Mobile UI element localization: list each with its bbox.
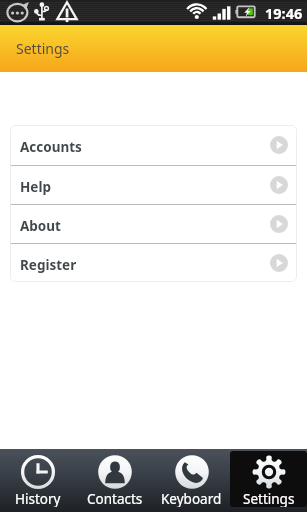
staticText: Settings	[16, 39, 70, 58]
staticText: About	[20, 217, 61, 235]
button[interactable]: Contacts	[76, 451, 153, 507]
staticText: Contacts	[87, 490, 143, 507]
button[interactable]: Help	[10, 165, 297, 204]
button[interactable]: Settings	[230, 451, 307, 507]
button[interactable]: About	[10, 204, 297, 243]
staticText: History	[15, 490, 61, 507]
staticText: Keyboard	[161, 490, 222, 507]
staticText: 19:46	[265, 3, 303, 23]
button[interactable]: Register	[10, 243, 297, 282]
button[interactable]: Keyboard	[153, 451, 230, 507]
staticText: Settings	[243, 490, 295, 507]
button[interactable]: History	[0, 451, 76, 507]
button[interactable]: Accounts	[10, 125, 297, 165]
staticText: Accounts	[20, 138, 82, 156]
staticText: Register	[20, 256, 77, 274]
staticText: Help	[20, 178, 51, 196]
